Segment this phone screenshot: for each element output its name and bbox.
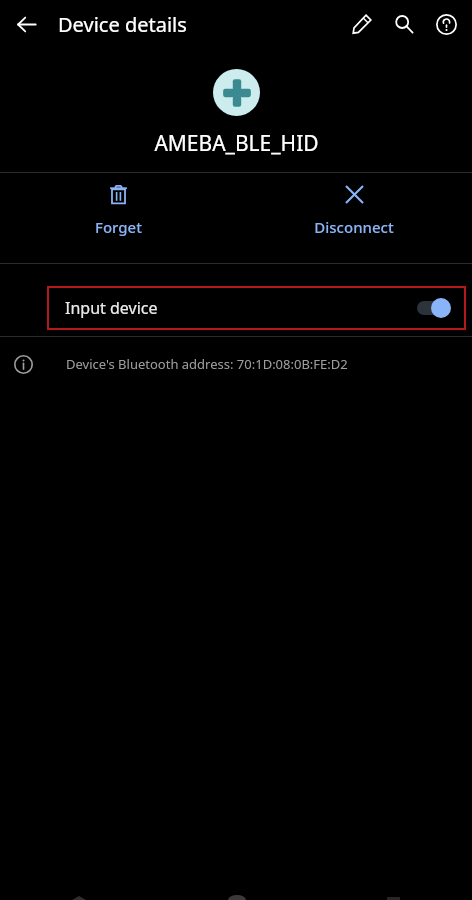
- staticText: Forget: [95, 217, 142, 237]
- button[interactable]: Input device: [47, 286, 466, 330]
- button[interactable]: Back: [6, 4, 46, 44]
- staticText: Device details: [58, 11, 187, 38]
- button[interactable]: Search: [383, 3, 425, 45]
- staticText: Disconnect: [314, 217, 394, 237]
- staticText: Input device: [65, 297, 158, 319]
- button[interactable]: Rename device: [341, 3, 383, 45]
- staticText: Device's Bluetooth address: 70:1D:08:0B:…: [66, 355, 348, 373]
- button[interactable]: Forget: [0, 173, 236, 245]
- staticText: AMEBA_BLE_HID: [154, 129, 319, 158]
- button[interactable]: Disconnect: [236, 173, 472, 245]
- button[interactable]: Help: [425, 3, 467, 45]
